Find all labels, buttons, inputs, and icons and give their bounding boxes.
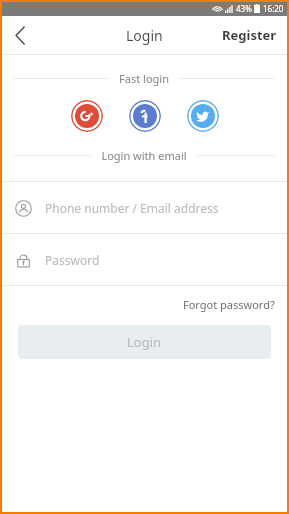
staticText: Phone number / Email address	[45, 200, 219, 216]
button[interactable]: Phone number / Email address	[0, 182, 289, 233]
button[interactable]: Sign in with Facebook	[129, 100, 161, 132]
button[interactable]: Back	[0, 16, 40, 54]
button[interactable]: Password	[0, 234, 289, 285]
button[interactable]: Sign in with Twitter	[187, 100, 219, 132]
button[interactable]: Login	[18, 325, 271, 359]
staticText: Fast login	[119, 71, 169, 86]
staticText: 16:20	[263, 3, 284, 14]
button[interactable]: Sign in with Google Plus	[71, 100, 103, 132]
staticText: 43%	[236, 3, 252, 14]
staticText: Password	[45, 252, 100, 268]
staticText: Register	[222, 26, 277, 44]
staticText: Forgot password?	[183, 297, 275, 312]
button[interactable]: Register	[210, 16, 289, 54]
staticText: Login	[126, 26, 163, 45]
staticText: Login	[127, 333, 162, 351]
button[interactable]: Forgot password?	[179, 294, 279, 315]
staticText: Login with email	[101, 148, 187, 163]
